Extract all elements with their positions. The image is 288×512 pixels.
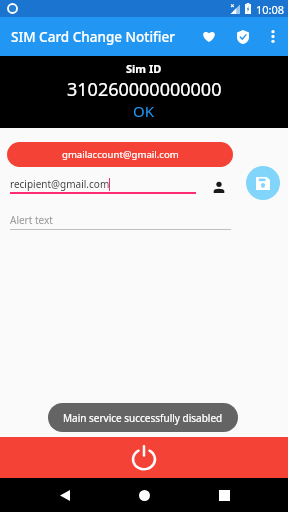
staticText: 310260000000000: [67, 77, 222, 102]
staticText: Main service successfully disabled: [63, 411, 223, 425]
button[interactable]: Back: [50, 480, 80, 510]
staticText: 10:08: [256, 2, 285, 17]
button[interactable]: Protection: [229, 23, 257, 51]
button[interactable]: recipient@gmail.com: [0, 176, 200, 198]
staticText: recipient@gmail.com: [10, 177, 110, 191]
button[interactable]: gmailaccount@gmail.com: [7, 142, 233, 167]
staticText: SIM Card Change Notifier: [11, 28, 176, 46]
button[interactable]: Home: [129, 480, 159, 510]
staticText: Sim ID: [126, 61, 162, 76]
button[interactable]: Pick contact: [207, 175, 231, 199]
button[interactable]: Save: [246, 166, 280, 200]
button[interactable]: More options: [259, 23, 286, 50]
staticText: gmailaccount@gmail.com: [62, 148, 179, 161]
staticText: OK: [133, 101, 155, 121]
button[interactable]: Power toggle: [0, 437, 288, 478]
button[interactable]: Recents: [209, 480, 239, 510]
button[interactable]: Alert text: [0, 212, 231, 234]
button[interactable]: Favorite: [195, 23, 223, 51]
staticText: Alert text: [10, 213, 53, 227]
